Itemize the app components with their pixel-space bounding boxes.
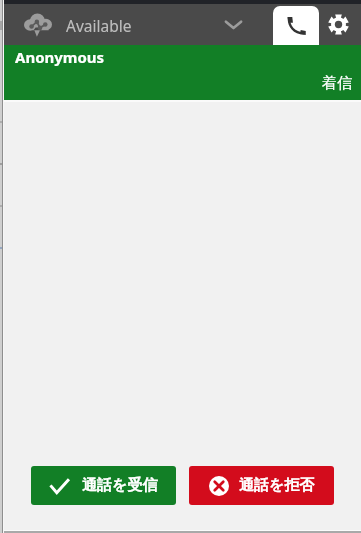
- button[interactable]: Calls tab: [273, 4, 319, 45]
- button[interactable]: 通話を受信: [31, 466, 176, 505]
- button[interactable]: Settings: [328, 4, 349, 45]
- staticText: 通話を拒否: [239, 476, 315, 495]
- staticText: 通話を受信: [82, 476, 158, 495]
- staticText: 着信: [322, 74, 352, 93]
- button[interactable]: 通話を拒否: [189, 466, 334, 505]
- staticText: Available: [66, 15, 132, 36]
- staticText: Anonymous: [15, 47, 105, 67]
- button[interactable]: Expand status: [213, 4, 253, 45]
- button[interactable]: Presence status: [24, 4, 132, 45]
